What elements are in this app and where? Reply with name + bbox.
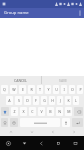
button[interactable]: F bbox=[33, 96, 39, 105]
button[interactable]: More options bbox=[75, 8, 84, 18]
staticText: B bbox=[49, 109, 52, 114]
button[interactable]: Enter bbox=[72, 118, 83, 127]
button[interactable]: G bbox=[41, 96, 47, 105]
button[interactable]: Symbols bbox=[1, 118, 8, 127]
button[interactable]: O bbox=[69, 85, 75, 94]
button[interactable]: A bbox=[6, 96, 13, 105]
staticText: N bbox=[58, 109, 61, 114]
button[interactable]: Recents bbox=[67, 136, 84, 150]
staticText: V bbox=[40, 109, 43, 114]
button[interactable]: Right bbox=[63, 128, 84, 136]
staticText: M bbox=[67, 109, 71, 114]
staticText: O bbox=[71, 87, 74, 92]
staticText: S bbox=[18, 98, 20, 103]
button[interactable]: I bbox=[61, 85, 67, 94]
button[interactable]: Left bbox=[42, 128, 63, 136]
staticText: G bbox=[43, 98, 46, 103]
button[interactable]: Voice input bbox=[62, 118, 70, 127]
staticText: R bbox=[30, 87, 33, 92]
button[interactable]: L bbox=[73, 96, 79, 105]
staticText: D bbox=[26, 98, 29, 103]
button[interactable]: S bbox=[15, 96, 22, 105]
staticText: Group name bbox=[4, 10, 29, 16]
button[interactable]: U bbox=[53, 85, 59, 94]
button[interactable]: E bbox=[19, 85, 26, 94]
button[interactable]: M bbox=[65, 107, 72, 116]
button[interactable]: N bbox=[56, 107, 63, 116]
staticText: F bbox=[35, 98, 37, 103]
staticText: L bbox=[75, 98, 77, 103]
button[interactable]: Back bbox=[33, 136, 50, 150]
button[interactable]: Down bbox=[21, 128, 42, 136]
button[interactable]: SAVE bbox=[42, 76, 84, 84]
staticText: J bbox=[60, 98, 61, 103]
button[interactable]: R bbox=[28, 85, 35, 94]
button[interactable]: C bbox=[29, 107, 36, 116]
staticText: Q bbox=[3, 87, 6, 92]
button[interactable]: Space bbox=[20, 118, 60, 127]
button[interactable]: Keyboard bbox=[0, 136, 16, 150]
button[interactable]: CANCEL bbox=[0, 76, 41, 84]
button[interactable]: Z bbox=[11, 107, 18, 116]
button[interactable]: Hide keyboard bbox=[16, 136, 33, 150]
staticText: T bbox=[39, 87, 41, 92]
staticText: CANCEL bbox=[14, 78, 27, 83]
staticText: Y bbox=[47, 87, 50, 92]
button[interactable]: Home bbox=[50, 136, 67, 150]
button[interactable]: Backspace bbox=[74, 107, 83, 116]
button[interactable]: K bbox=[65, 96, 71, 105]
button[interactable]: Up bbox=[0, 128, 21, 136]
staticText: E bbox=[22, 87, 24, 92]
button[interactable]: W bbox=[10, 85, 17, 94]
staticText: I bbox=[63, 87, 65, 92]
button[interactable]: D bbox=[24, 96, 31, 105]
button[interactable]: J bbox=[57, 96, 63, 105]
button[interactable]: Q bbox=[1, 85, 8, 94]
staticText: X bbox=[22, 109, 25, 114]
staticText: A bbox=[8, 98, 11, 103]
button[interactable]: T bbox=[37, 85, 43, 94]
button[interactable]: V bbox=[38, 107, 45, 116]
button[interactable]: H bbox=[49, 96, 55, 105]
staticText: W bbox=[12, 87, 16, 92]
staticText: U bbox=[55, 87, 58, 92]
staticText: SAVE bbox=[59, 78, 67, 83]
staticText: Z bbox=[13, 109, 16, 114]
button[interactable]: X bbox=[20, 107, 27, 116]
button[interactable]: B bbox=[47, 107, 54, 116]
staticText: K bbox=[67, 98, 70, 103]
button[interactable]: Emoji bbox=[10, 118, 18, 127]
button[interactable]: Y bbox=[45, 85, 51, 94]
button[interactable]: Shift bbox=[1, 107, 9, 116]
staticText: P bbox=[79, 87, 82, 92]
button[interactable]: P bbox=[77, 85, 83, 94]
staticText: C bbox=[31, 109, 34, 114]
staticText: H bbox=[51, 98, 54, 103]
